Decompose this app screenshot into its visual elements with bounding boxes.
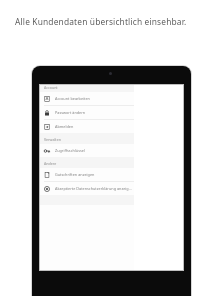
staticText: Gutschriften anzeigen <box>55 172 95 177</box>
button[interactable]: Abmelden <box>40 120 134 133</box>
button[interactable]: Zugriffsschlüssel <box>40 144 134 157</box>
button[interactable]: Gutschriften anzeigen <box>40 168 134 181</box>
button[interactable]: Akzeptierte Datenschutzerklärung anzeig… <box>40 182 134 195</box>
staticText: Abmelden <box>55 124 74 129</box>
staticText: Akzeptierte Datenschutzerklärung anzeig… <box>55 186 132 191</box>
staticText: Alle Kundendaten übersichtlich einsehbar… <box>15 16 187 27</box>
button[interactable]: Passwort ändern <box>40 106 134 119</box>
staticText: Account bearbeiten <box>55 96 90 101</box>
staticText: Zugriffsschlüssel <box>55 148 85 153</box>
staticText: Verwalten <box>44 137 61 142</box>
staticText: Account <box>44 85 58 90</box>
button[interactable]: Account bearbeiten <box>40 92 134 105</box>
staticText: Passwort ändern <box>55 110 86 115</box>
staticText: Andere <box>44 161 57 166</box>
